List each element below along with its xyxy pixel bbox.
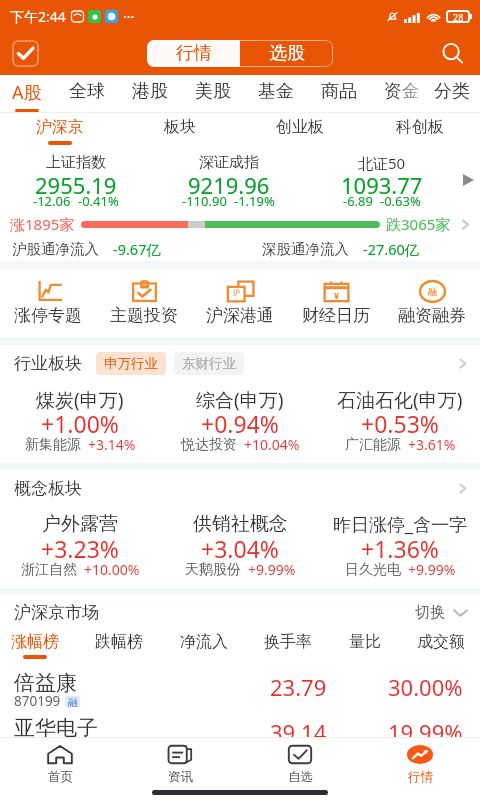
staticText: 9219.96 [188,170,270,200]
button[interactable]: 涨停专题 [0,269,96,337]
staticText: +3.23% [41,533,119,564]
button[interactable]: More indices [463,174,474,186]
staticText: 全球 [69,80,105,103]
staticText: 跌幅榜 [95,632,143,652]
button[interactable]: 基金 [258,75,294,112]
staticText: 资讯 [168,769,193,785]
button[interactable]: 亚华电子 [0,707,480,752]
button[interactable]: 换手率 [264,629,312,662]
button[interactable]: 上证指数 [0,147,152,211]
staticText: -0.41% [78,192,119,210]
staticText: +3.14% [88,435,136,454]
staticText: 日久光电 [345,561,401,579]
staticText: -110.90 [182,192,227,210]
button[interactable]: 深证成指 [152,147,305,211]
staticText: +9.99% [408,560,456,579]
staticText: -0.63% [380,192,421,210]
staticText: 行情 [176,42,212,65]
button[interactable]: 石油石化(申万) [320,381,480,463]
button[interactable]: 申万行业 [104,355,158,372]
button[interactable]: 沪 [192,269,288,337]
staticText: 亚华电子 [14,715,98,741]
button[interactable]: 行情 [360,738,480,800]
button[interactable]: 沪深京 [0,113,120,147]
button[interactable]: 成交额 [417,629,465,662]
button[interactable]: 资金 [384,75,420,112]
staticText: 深股通净流入 [262,240,349,258]
button[interactable]: 融 [384,269,480,337]
button[interactable]: 商品 [321,75,357,112]
button[interactable]: 煤炭(申万) [0,381,160,463]
button[interactable]: 分类 [434,75,470,112]
staticText: 涨1895家 [10,214,75,234]
button[interactable]: 概念板块 [0,470,480,506]
button[interactable]: 行情 [147,40,240,67]
staticText: 换手率 [264,632,312,652]
staticText: 涨幅榜 [11,632,59,652]
staticText: ··· [123,7,135,26]
button[interactable]: 涨幅榜 [11,629,59,662]
button[interactable]: 板块 [120,113,240,147]
staticText: 量比 [349,632,381,652]
button[interactable]: 创业板 [240,113,360,147]
staticText: 23.79 [270,672,327,702]
button[interactable]: 全球 [69,75,105,112]
staticText: 19.99% [388,717,463,747]
staticText: 自选 [288,769,313,785]
button[interactable]: 跌幅榜 [95,629,143,662]
staticText: -27.60亿 [363,239,420,259]
button[interactable]: 涨1895家 [0,211,480,237]
staticText: 深证成指 [199,153,259,172]
button[interactable]: 首页 [0,738,120,800]
button[interactable]: 资讯 [120,738,240,800]
button[interactable]: 综合(申万) [160,381,320,463]
button[interactable]: My stocks [12,40,39,67]
staticText: +3.61% [408,435,456,454]
button[interactable]: ¥ [288,269,384,337]
staticText: -9.67亿 [113,239,161,259]
staticText: 成交额 [417,632,465,652]
button[interactable]: 行业板块 [0,345,480,381]
button[interactable]: 昨日涨停_含一字 [320,506,480,588]
staticText: 基金 [258,80,294,103]
staticText: -6.89 [343,192,373,210]
button[interactable]: 北证50 [305,147,458,211]
button[interactable]: 美股 [195,75,231,112]
button[interactable]: 选股 [240,40,333,67]
staticText: +1.36% [361,533,439,564]
staticText: 创业板 [276,117,324,137]
staticText: 沪 [233,288,240,297]
staticText: 商品 [321,80,357,103]
staticText: 沪深京市场 [14,602,99,623]
staticText: 301337 [14,737,61,755]
staticText: 2955.19 [35,170,117,200]
staticText: +0.94% [201,408,279,439]
button[interactable]: A股 [12,75,42,112]
button[interactable]: 自选 [240,738,360,800]
staticText: 东财行业 [182,355,236,372]
staticText: 融 [68,741,78,752]
button[interactable]: 净流入 [180,629,228,662]
staticText: +9.99% [248,560,296,579]
button[interactable]: Search [436,37,470,71]
staticText: +3.04% [201,533,279,564]
staticText: +1.00% [41,408,119,439]
button[interactable]: 户外露营 [0,506,160,588]
staticText: 28 [453,11,464,23]
staticText: 沪股通净流入 [12,240,99,258]
staticText: 煤炭(申万) [36,387,124,413]
button[interactable]: 科创板 [360,113,480,147]
button[interactable]: 主题投资 [96,269,192,337]
button[interactable]: 切换 [415,603,468,622]
button[interactable]: 供销社概念 [160,506,320,588]
staticText: 美股 [195,80,231,103]
button[interactable]: 量比 [349,629,381,662]
staticText: 天鹅股份 [185,561,241,579]
staticText: 供销社概念 [193,512,288,536]
staticText: -1.19% [234,192,275,210]
button[interactable]: 倍益康 [0,662,480,707]
staticText: 资金 [384,80,420,103]
button[interactable]: 东财行业 [182,355,236,372]
staticText: 首页 [48,769,73,785]
button[interactable]: 港股 [132,75,168,112]
